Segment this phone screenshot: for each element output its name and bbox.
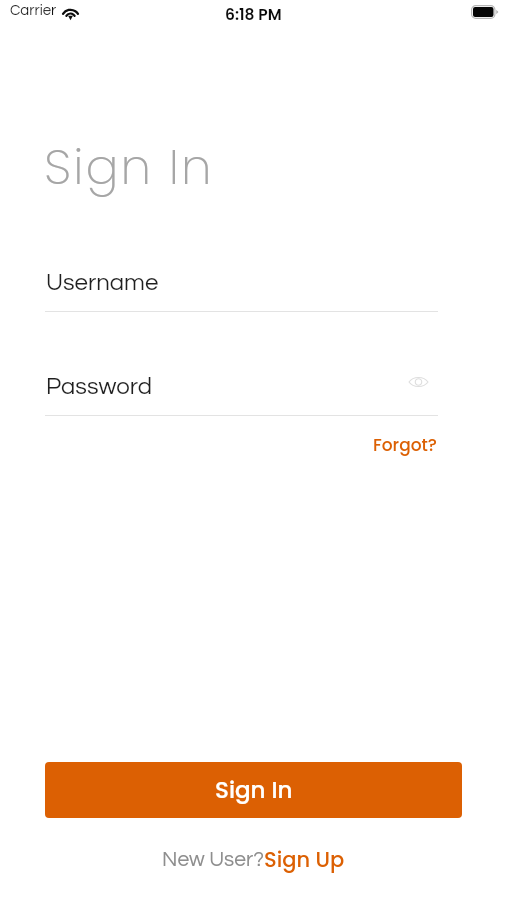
staticText: Sign In [215,774,293,806]
staticText: Forgot? [373,433,437,457]
staticText: Carrier [10,3,57,18]
staticText: New User? [162,849,264,871]
button[interactable]: Forgot? [362,427,448,461]
staticText: Password [46,374,152,399]
staticText: Username [46,270,159,295]
button[interactable]: Sign Up [264,845,345,874]
button[interactable]: Show password [405,370,431,393]
staticText: 6:18 PM [225,4,282,26]
button[interactable]: Sign In [45,762,462,818]
staticText: Sign In [44,133,214,202]
